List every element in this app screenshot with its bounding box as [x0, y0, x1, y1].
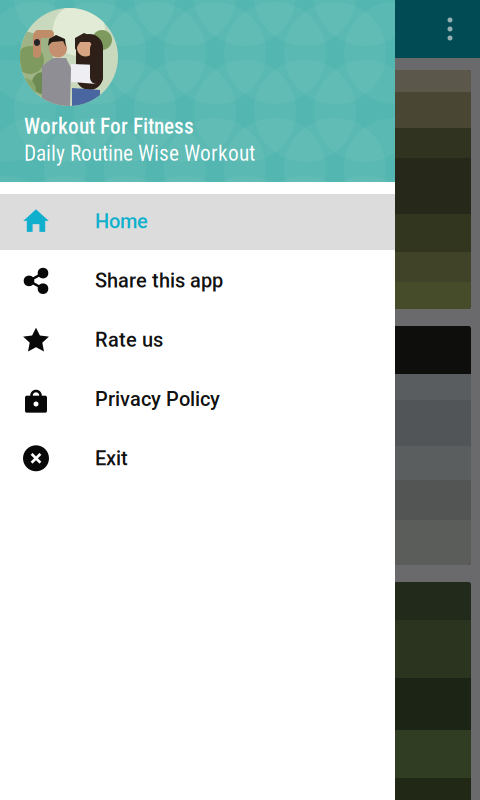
- staticText: Daily Routine Wise Workout: [24, 141, 255, 166]
- staticText: Workout For Fitness: [24, 114, 194, 139]
- staticText: Rate us: [95, 328, 163, 352]
- button[interactable]: Privacy Policy: [0, 372, 395, 431]
- staticText: Share this app: [95, 269, 223, 292]
- button[interactable]: Home: [0, 194, 395, 253]
- button[interactable]: Rate us: [0, 312, 395, 372]
- button[interactable]: More options: [428, 7, 472, 51]
- staticText: Privacy Policy: [95, 387, 220, 411]
- button[interactable]: Exit: [0, 431, 395, 490]
- staticText: Exit: [95, 447, 128, 470]
- button[interactable]: Share this app: [0, 253, 395, 312]
- staticText: Home: [95, 210, 148, 233]
